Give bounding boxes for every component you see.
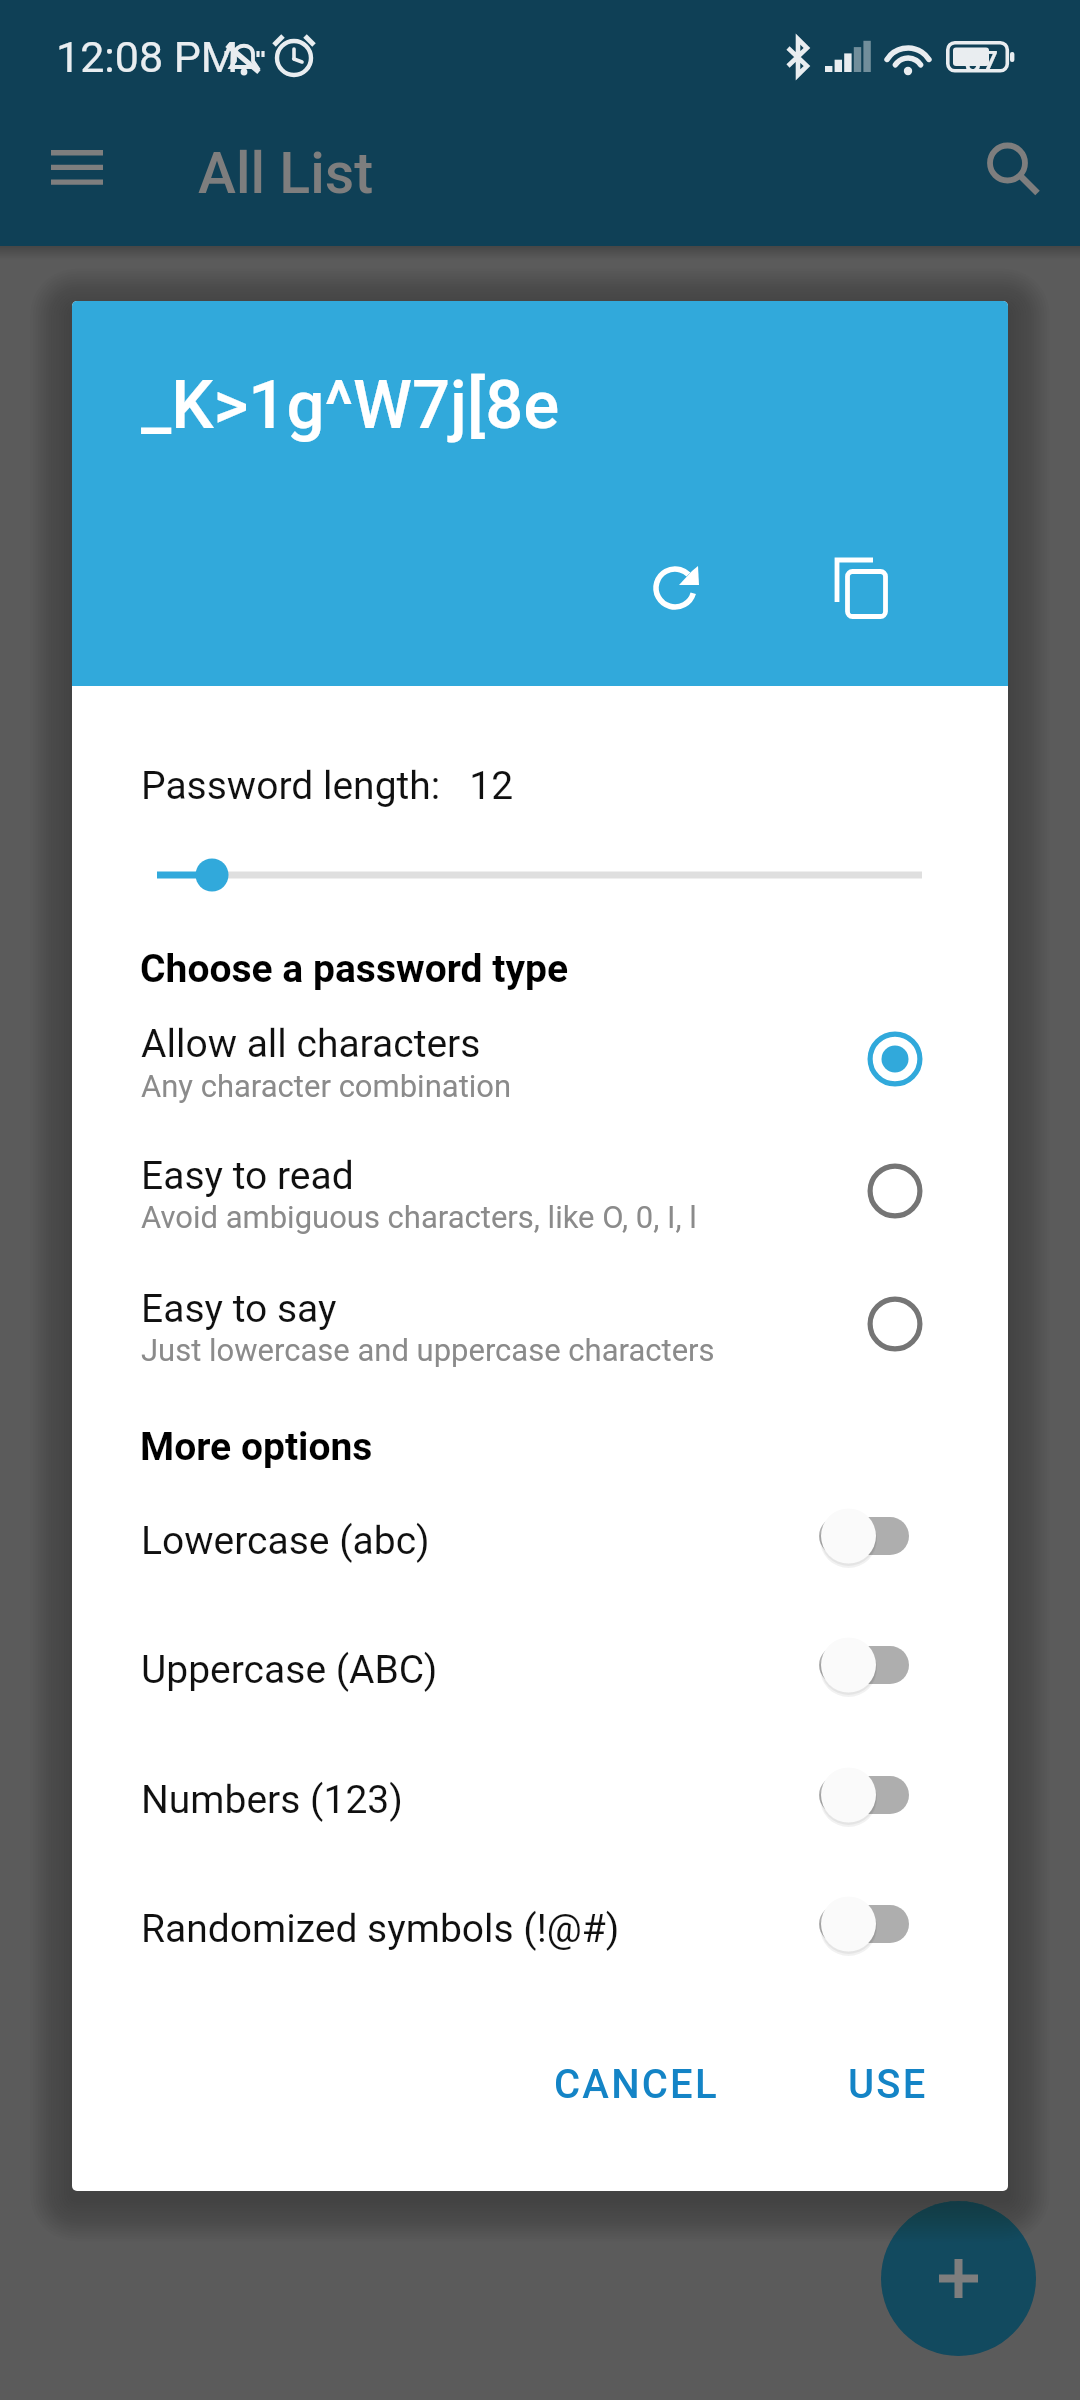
staticText: 57 xyxy=(964,44,999,79)
staticText: Any character combination xyxy=(141,1068,512,1104)
button[interactable]: Allow all characters xyxy=(72,994,1008,1126)
staticText: Allow all characters xyxy=(141,1021,481,1067)
button[interactable]: Add new item xyxy=(881,2201,1036,2356)
button[interactable]: USE xyxy=(808,2028,968,2140)
button[interactable]: Copy password xyxy=(801,528,913,640)
staticText: Choose a password type xyxy=(140,946,569,992)
staticText: USE xyxy=(848,2061,928,2108)
staticText: Just lowercase and uppercase characters xyxy=(141,1332,715,1368)
button[interactable]: Randomized symbols (!@#) xyxy=(72,1863,1008,1992)
button[interactable]: Easy to say xyxy=(72,1259,1008,1391)
staticText: Avoid ambiguous characters, like O, 0, I… xyxy=(141,1199,697,1235)
button[interactable]: CANCEL xyxy=(525,2028,747,2140)
staticText: All List xyxy=(198,140,374,207)
button[interactable]: Uppercase (ABC) xyxy=(72,1604,1008,1733)
staticText: Lowercase (abc) xyxy=(141,1518,430,1564)
button[interactable]: Open navigation menu xyxy=(11,101,143,233)
button[interactable]: Search xyxy=(950,108,1066,224)
staticText: Easy to say xyxy=(141,1286,337,1332)
staticText: More options xyxy=(140,1424,373,1470)
button[interactable]: Numbers (123) xyxy=(72,1734,1008,1863)
staticText: Numbers (123) xyxy=(141,1777,403,1823)
button[interactable]: Easy to read xyxy=(72,1126,1008,1258)
button[interactable]: Regenerate password xyxy=(619,532,731,644)
staticText: 12:08 PM xyxy=(56,32,239,82)
staticText: _K>1g^W7j[8e xyxy=(141,366,560,445)
staticText: Password length: 12 xyxy=(141,763,514,809)
staticText: Uppercase (ABC) xyxy=(141,1647,438,1693)
button[interactable]: Lowercase (abc) xyxy=(72,1475,1008,1604)
staticText: Easy to read xyxy=(141,1153,354,1199)
staticText: Randomized symbols (!@#) xyxy=(141,1906,620,1952)
staticText: CANCEL xyxy=(554,2061,719,2108)
